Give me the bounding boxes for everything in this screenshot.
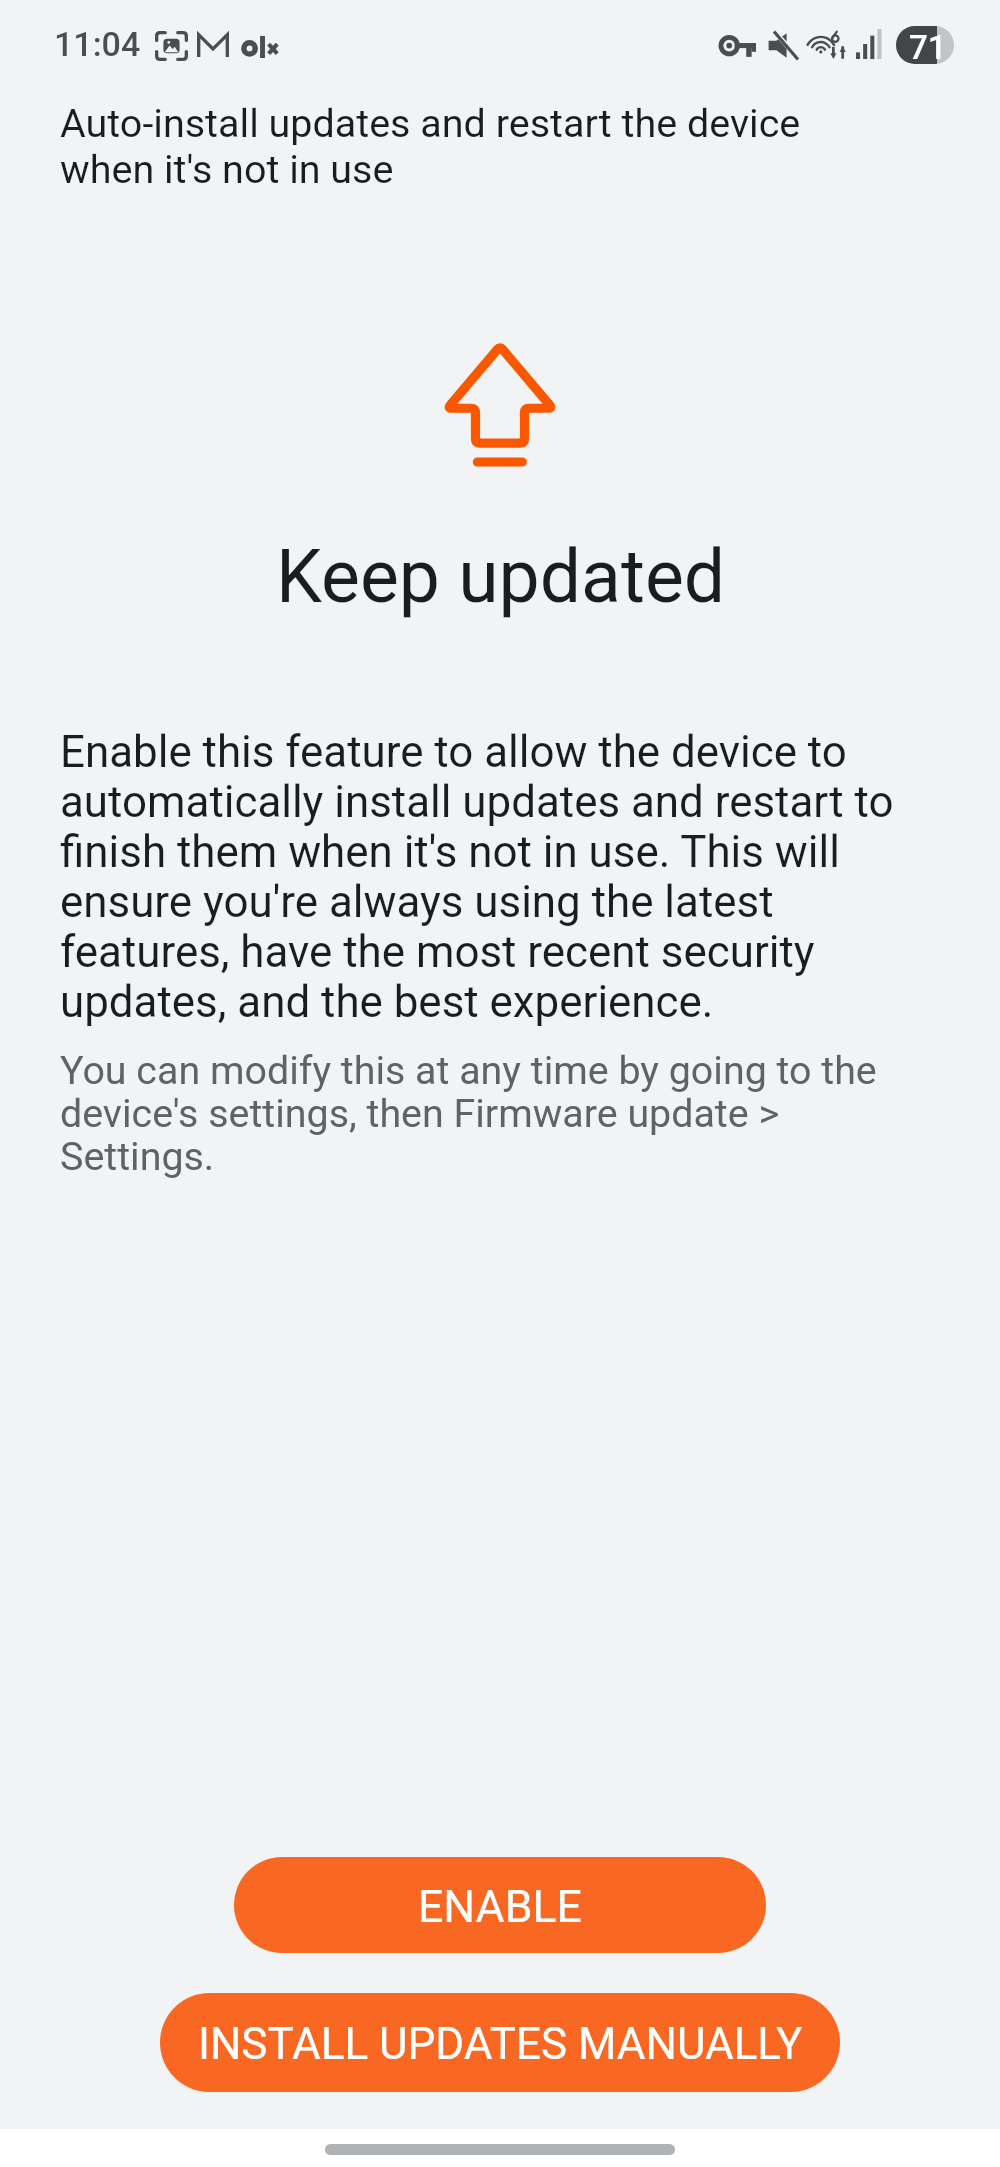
staticText: Enable this feature to allow the device … [60, 727, 926, 1027]
staticText: INSTALL UPDATES MANUALLY [198, 2018, 803, 2070]
button[interactable]: ENABLE [234, 1857, 766, 1953]
button[interactable]: INSTALL UPDATES MANUALLY [160, 1993, 840, 2092]
staticText: 71 [909, 28, 947, 64]
staticText: Keep updated [276, 535, 726, 619]
staticText: 11:04 [54, 24, 141, 64]
staticText: Auto-install updates and restart the dev… [60, 101, 830, 193]
staticText: ENABLE [418, 1881, 582, 1933]
staticText: You can modify this at any time by going… [60, 1050, 903, 1179]
